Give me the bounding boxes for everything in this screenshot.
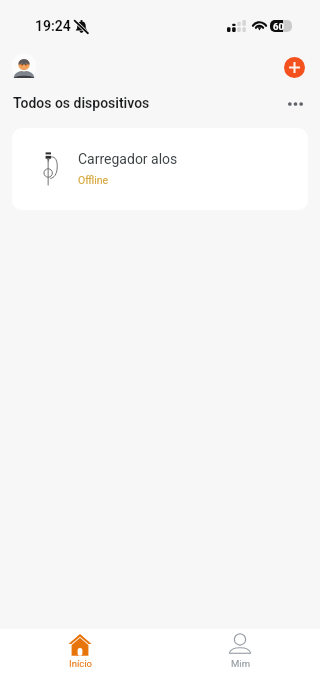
staticText: 60 — [273, 21, 284, 32]
button[interactable]: More options — [281, 90, 309, 118]
button[interactable]: Mim — [160, 629, 320, 696]
staticText: Mim — [231, 658, 250, 669]
button[interactable]: Carregador alos — [12, 128, 308, 210]
staticText: Todos os dispositivos — [13, 95, 150, 111]
staticText: Offline — [78, 174, 109, 186]
button[interactable]: Início — [0, 629, 160, 696]
staticText: 19:24 — [35, 18, 71, 34]
staticText: Carregador alos — [78, 151, 178, 167]
button[interactable]: Profile — [8, 50, 40, 82]
button[interactable]: Add device — [278, 51, 310, 83]
staticText: Início — [69, 658, 92, 669]
